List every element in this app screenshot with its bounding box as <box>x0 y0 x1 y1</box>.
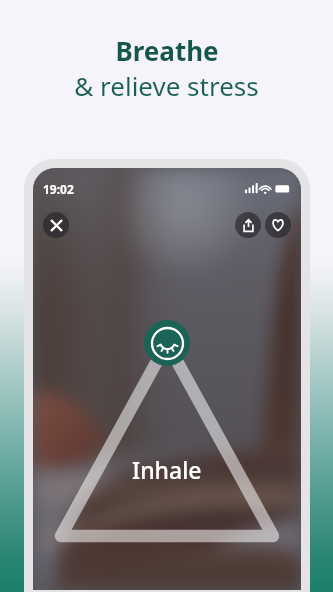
staticText: 19:02 <box>43 181 74 197</box>
staticText: Inhale <box>132 454 202 485</box>
staticText: Breathe <box>115 33 219 68</box>
button[interactable]: Close <box>43 212 69 238</box>
button[interactable]: Share <box>235 212 261 238</box>
staticText: & relieve stress <box>74 68 259 103</box>
button[interactable]: Breathing state <box>144 320 190 366</box>
button[interactable]: Favorite <box>265 212 291 238</box>
